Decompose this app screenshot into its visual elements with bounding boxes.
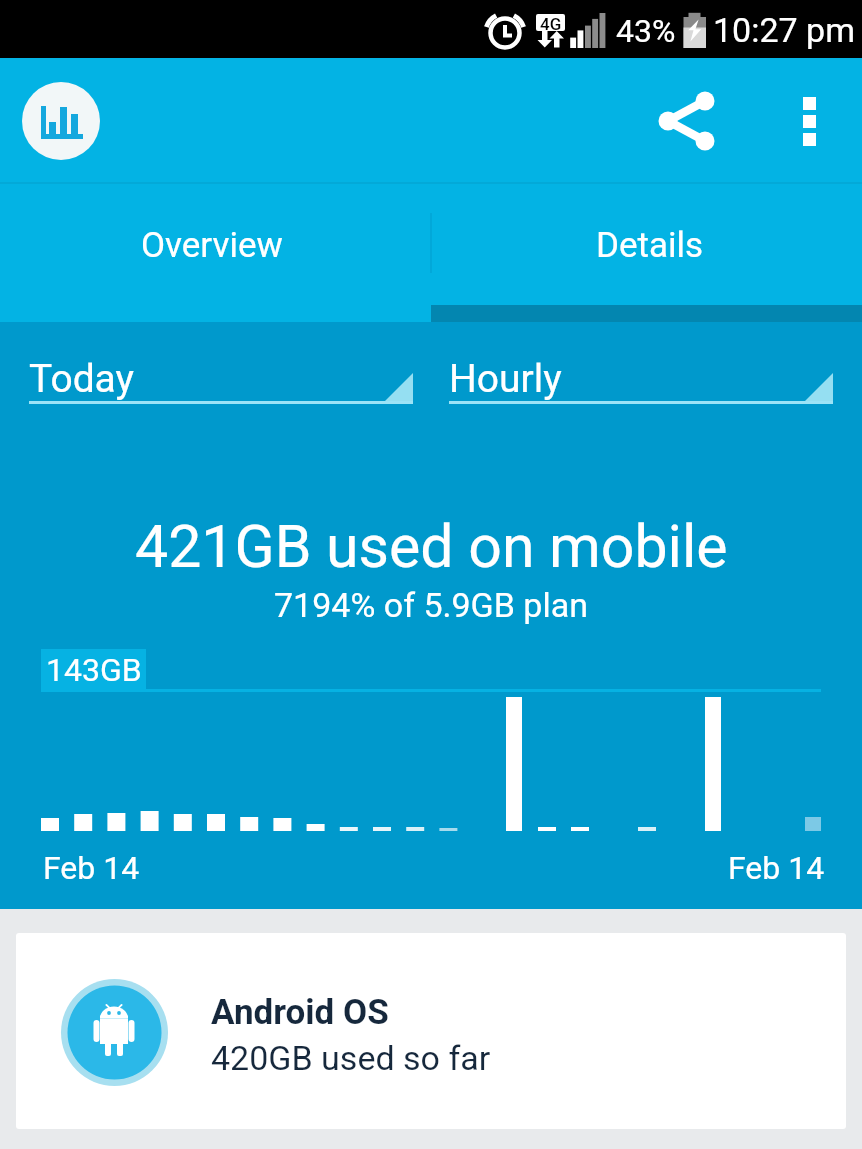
staticText: Hourly bbox=[449, 356, 562, 402]
staticText: Feb 14 bbox=[43, 849, 140, 887]
staticText: Android OS bbox=[211, 992, 389, 1033]
button[interactable]: Data usage bbox=[22, 82, 100, 160]
staticText: 7194% of 5.9GB plan bbox=[274, 585, 589, 625]
staticText: Today bbox=[29, 356, 135, 402]
staticText: Feb 14 bbox=[728, 849, 825, 887]
staticText: 143GB bbox=[46, 651, 142, 689]
staticText: 43% bbox=[616, 12, 676, 50]
button[interactable]: Hourly bbox=[449, 350, 833, 404]
button[interactable]: Overview bbox=[0, 184, 431, 322]
staticText: 4G bbox=[540, 14, 562, 31]
button[interactable]: Share bbox=[639, 75, 731, 167]
button[interactable]: More options bbox=[757, 75, 849, 167]
button[interactable]: Today bbox=[29, 350, 413, 404]
staticText: Details bbox=[596, 225, 704, 266]
staticText: Overview bbox=[141, 225, 283, 266]
button[interactable]: Details bbox=[431, 184, 862, 322]
staticText: 10:27 pm bbox=[713, 10, 856, 50]
staticText: 421GB used on mobile bbox=[135, 512, 728, 581]
button[interactable]: Android OS bbox=[16, 933, 846, 1129]
staticText: 420GB used so far bbox=[211, 1038, 491, 1078]
